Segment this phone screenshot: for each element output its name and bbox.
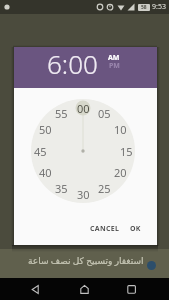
staticText: 35	[55, 181, 68, 195]
button[interactable]	[79, 284, 90, 295]
staticText: 20	[114, 165, 127, 179]
staticText: 05	[98, 106, 111, 120]
staticText: 6:00	[47, 46, 98, 80]
staticText: 30	[77, 187, 90, 201]
staticText: 55	[55, 106, 68, 120]
button[interactable]	[30, 284, 41, 295]
staticText: 58	[141, 4, 147, 11]
staticText: 15	[120, 144, 133, 158]
staticText: 10	[114, 122, 127, 136]
staticText: 25	[98, 181, 111, 195]
staticText: 00	[77, 101, 90, 115]
button[interactable]	[126, 284, 137, 295]
staticText: 9:53	[152, 2, 166, 12]
staticText: 50	[39, 122, 52, 136]
button[interactable]: AM	[0, 0, 24, 12]
staticText: 45	[34, 144, 47, 158]
button[interactable]: OK	[0, 0, 24, 14]
button[interactable]: استغفار وتسبيح كل نصف ساعة	[0, 249, 169, 278]
staticText: استغفار وتسبيح كل نصف ساعة	[28, 254, 144, 266]
staticText: PM	[109, 61, 120, 71]
staticText: OK	[130, 224, 141, 234]
button[interactable]: CANCEL	[0, 0, 40, 14]
button[interactable]: PM	[0, 0, 24, 12]
staticText: CANCEL	[90, 224, 120, 234]
staticText: 40	[39, 165, 52, 179]
staticText: AM	[108, 53, 120, 63]
